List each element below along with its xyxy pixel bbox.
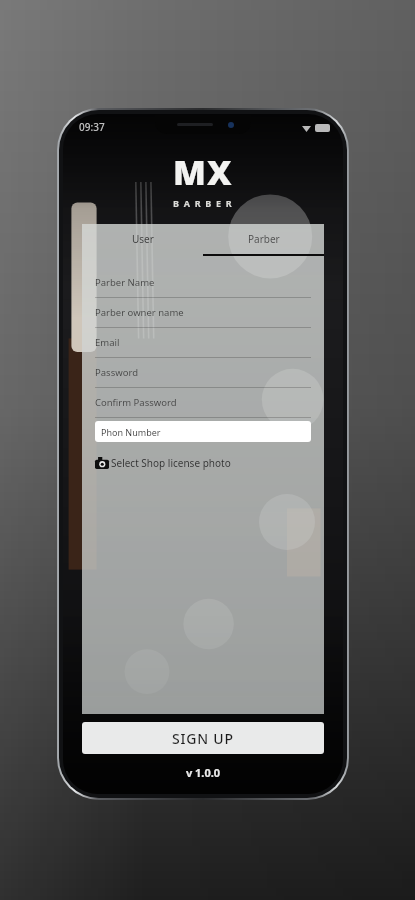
- staticText: B A R B E R: [173, 197, 233, 209]
- staticText: Parber Name: [95, 276, 155, 289]
- staticText: 09:37: [79, 120, 105, 134]
- button[interactable]: SIGN UP: [82, 722, 324, 754]
- staticText: v 1.0.0: [63, 765, 343, 780]
- staticText: Email: [95, 336, 120, 349]
- staticText: Parber: [248, 232, 280, 246]
- staticText: MX: [173, 149, 233, 195]
- button[interactable]: Phon Number: [95, 421, 311, 442]
- staticText: Confirm Password: [95, 396, 177, 409]
- button[interactable]: Confirm Password: [95, 388, 311, 418]
- staticText: Parber owner name: [95, 306, 184, 319]
- button[interactable]: Email: [95, 328, 311, 358]
- button[interactable]: Parber owner name: [95, 298, 311, 328]
- staticText: Password: [95, 366, 138, 379]
- button[interactable]: User: [82, 224, 203, 254]
- button[interactable]: Select Shop license photo: [95, 454, 311, 472]
- staticText: SIGN UP: [172, 729, 234, 748]
- staticText: User: [132, 232, 154, 246]
- button[interactable]: Parber Name: [95, 268, 311, 298]
- button[interactable]: Parber: [203, 224, 324, 254]
- staticText: Select Shop license photo: [111, 456, 231, 470]
- staticText: Phon Number: [101, 426, 161, 438]
- button[interactable]: Password: [95, 358, 311, 388]
